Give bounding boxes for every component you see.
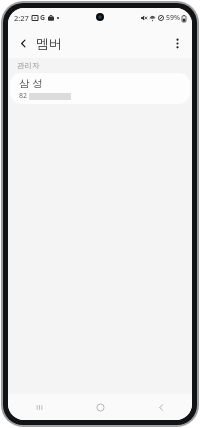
staticText: G [40, 13, 46, 23]
button[interactable]: More options [167, 33, 187, 53]
staticText: 관리자 [17, 61, 40, 70]
staticText: 삼 성 [19, 76, 43, 90]
button[interactable]: Back [131, 394, 192, 420]
button[interactable]: 삼 성 [10, 73, 190, 104]
button[interactable]: Recent apps [8, 394, 70, 420]
staticText: 멤버 [36, 35, 62, 51]
staticText: 59% [166, 13, 180, 23]
staticText: 82 [19, 91, 28, 101]
button[interactable]: Home [70, 394, 131, 420]
staticText: 2:27 [14, 13, 29, 23]
button[interactable]: Navigate up [13, 33, 33, 53]
